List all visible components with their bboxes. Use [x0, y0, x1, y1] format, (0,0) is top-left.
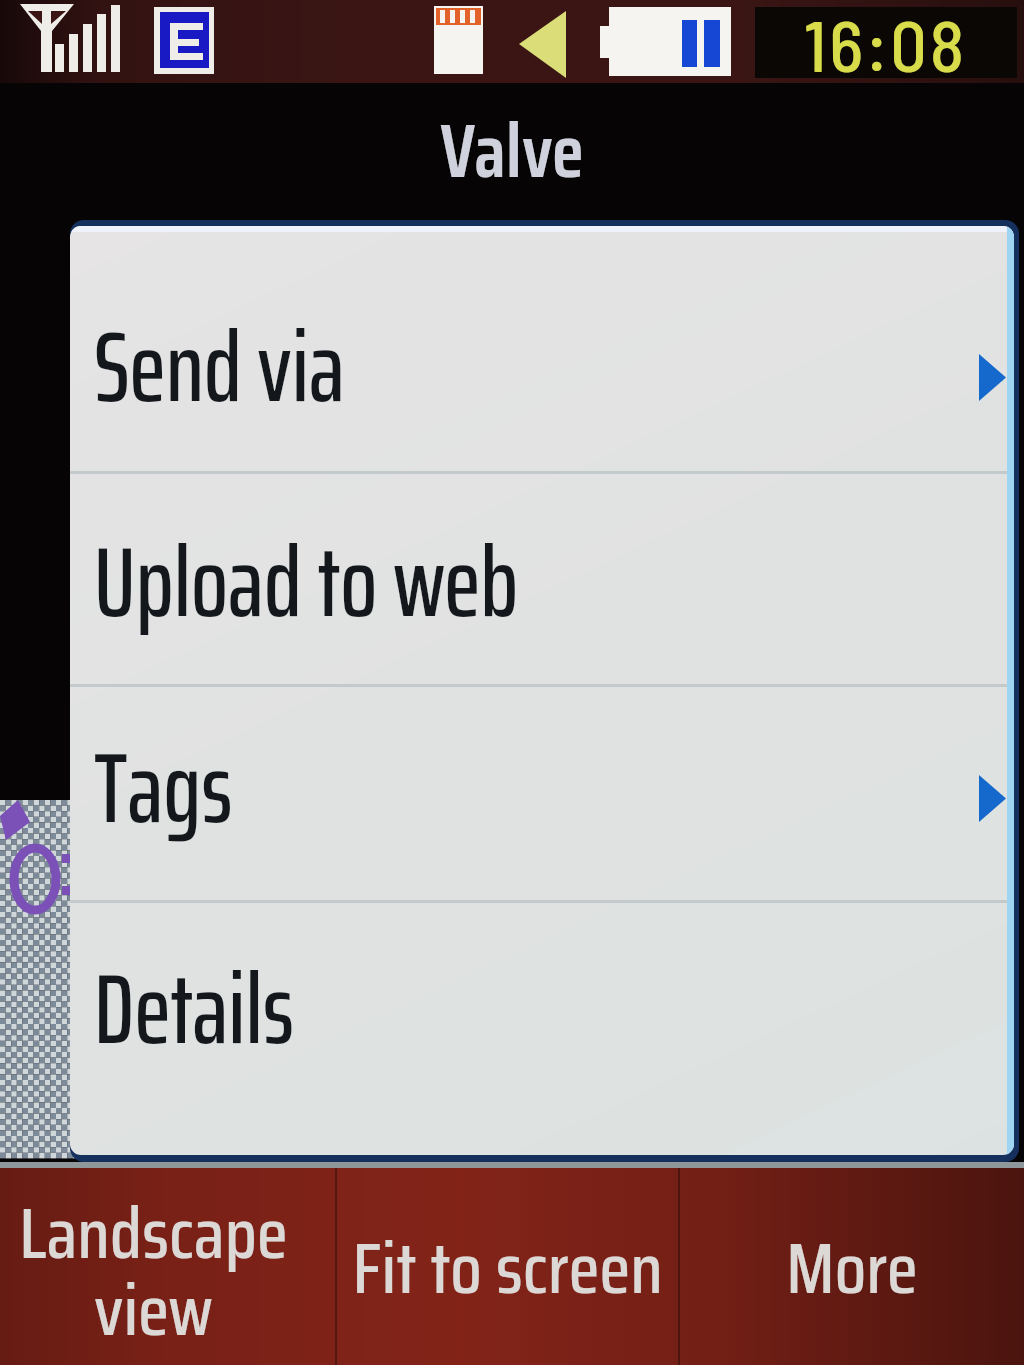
- staticText: 16:08: [804, 0, 968, 83]
- staticText: Send via: [94, 290, 345, 444]
- button[interactable]: Details: [70, 897, 1014, 1111]
- button[interactable]: More: [680, 1168, 1024, 1365]
- staticText: Details: [94, 932, 294, 1086]
- button[interactable]: Send via: [70, 255, 1014, 469]
- staticText: Tags: [94, 711, 233, 865]
- staticText: More: [786, 1211, 918, 1324]
- button[interactable]: Fit to screen: [337, 1168, 678, 1365]
- button[interactable]: Landscape view: [0, 1168, 335, 1365]
- staticText: Landscape view: [19, 1176, 288, 1365]
- staticText: Fit to screen: [352, 1211, 663, 1324]
- staticText: Upload to web: [94, 505, 519, 659]
- button[interactable]: Tags: [70, 676, 1014, 890]
- button[interactable]: Upload to web: [70, 470, 1014, 684]
- staticText: Valve: [440, 92, 584, 210]
